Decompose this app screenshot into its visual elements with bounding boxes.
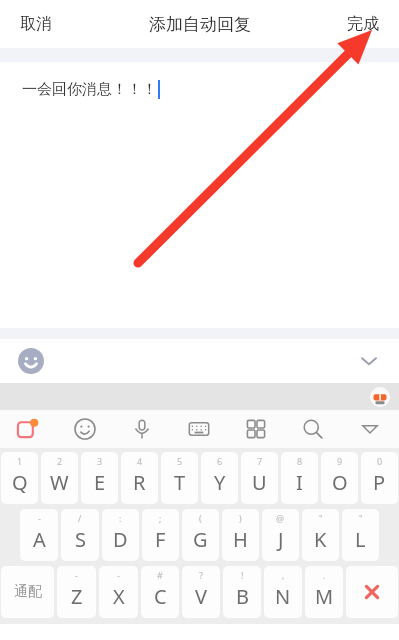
staticText: @ [276,512,285,524]
button[interactable]: 5 [161,452,198,504]
staticText: A [33,526,46,553]
staticText: 5 [177,455,183,467]
button[interactable]: . [305,566,343,618]
button[interactable]: / [61,509,99,561]
staticText: F [155,526,166,553]
staticText: 7 [257,455,263,467]
staticText: ( [199,512,202,524]
button[interactable]: , [264,566,302,618]
button[interactable]: - [20,509,58,561]
staticText: X [113,583,125,610]
button[interactable]: Emoji [14,344,48,378]
button[interactable]: - [57,566,96,618]
button[interactable]: 取消 [0,4,72,44]
button[interactable]: Hide keyboard [341,410,399,448]
button[interactable]: 3 [81,452,118,504]
staticText: , [282,569,285,581]
staticText: U [252,469,267,496]
staticText: 添加自动回复 [149,14,251,35]
staticText: E [94,469,106,496]
button[interactable]: ! [223,566,261,618]
staticText: / [78,512,82,524]
staticText: . [323,569,326,581]
button[interactable]: 9 [321,452,358,504]
staticText: - [75,569,78,581]
staticText: D [113,526,128,553]
button[interactable]: 通配 [1,566,54,618]
staticText: 一会回你消息！！！ [22,80,157,99]
button[interactable]: Assistant [369,386,391,408]
staticText: # [157,569,163,581]
button[interactable]: 4 [121,452,158,504]
staticText: 3 [97,455,103,467]
button[interactable]: Voice input [113,410,170,448]
button[interactable]: @ [262,509,299,561]
staticText: ) [239,512,242,524]
button[interactable]: 8 [281,452,318,504]
button[interactable]: 2 [41,452,78,504]
staticText: - [38,512,41,524]
staticText: V [195,583,207,610]
staticText: H [233,526,248,553]
staticText: ! [241,569,244,581]
button[interactable]: " [302,509,339,561]
button[interactable]: Collapse [351,343,387,379]
button[interactable]: 0 [361,452,398,504]
button[interactable]: 6 [201,452,238,504]
staticText: 0 [377,455,383,467]
staticText: T [174,469,186,496]
button[interactable]: Keyboard [170,410,227,448]
button[interactable]: : [102,509,139,561]
staticText: 8 [297,455,303,467]
staticText: B [236,583,249,610]
staticText: " [319,512,323,524]
staticText: : [119,512,122,524]
staticText: ? [199,569,203,581]
button[interactable]: 完成 [327,4,399,44]
staticText: 1 [17,455,23,467]
staticText: Z [71,583,83,610]
staticText: " [359,512,363,524]
staticText: M [315,583,334,610]
staticText: 完成 [347,14,379,34]
staticText: Y [214,469,226,496]
button[interactable]: # [141,566,179,618]
staticText: G [193,526,208,553]
staticText: 2 [57,455,63,467]
staticText: C [154,583,167,610]
staticText: ; [159,512,162,524]
staticText: 取消 [20,14,52,34]
button[interactable]: ( [182,509,219,561]
button[interactable]: ) [222,509,259,561]
staticText: 6 [217,455,223,467]
button[interactable]: ; [142,509,179,561]
staticText: J [278,526,284,553]
staticText: L [355,526,366,553]
staticText: P [373,469,386,496]
staticText: 通配 [14,583,42,601]
staticText: 4 [137,455,143,467]
button[interactable]: More [227,410,284,448]
staticText: I [296,469,303,496]
button[interactable]: Delete [346,566,398,618]
button[interactable]: 7 [241,452,278,504]
staticText: 9 [337,455,343,467]
button[interactable]: Emoticons [56,410,113,448]
staticText: O [332,469,348,496]
button[interactable]: Search [284,410,341,448]
button[interactable]: " [342,509,379,561]
staticText: N [275,583,291,610]
staticText: R [133,469,146,496]
staticText: Q [12,469,28,496]
staticText: S [75,526,86,553]
staticText: K [314,526,327,553]
staticText: - [117,569,120,581]
button[interactable]: - [99,566,138,618]
button[interactable]: Sogou [0,410,56,448]
staticText: W [50,469,69,496]
button[interactable]: ? [182,566,220,618]
button[interactable]: 1 [1,452,38,504]
